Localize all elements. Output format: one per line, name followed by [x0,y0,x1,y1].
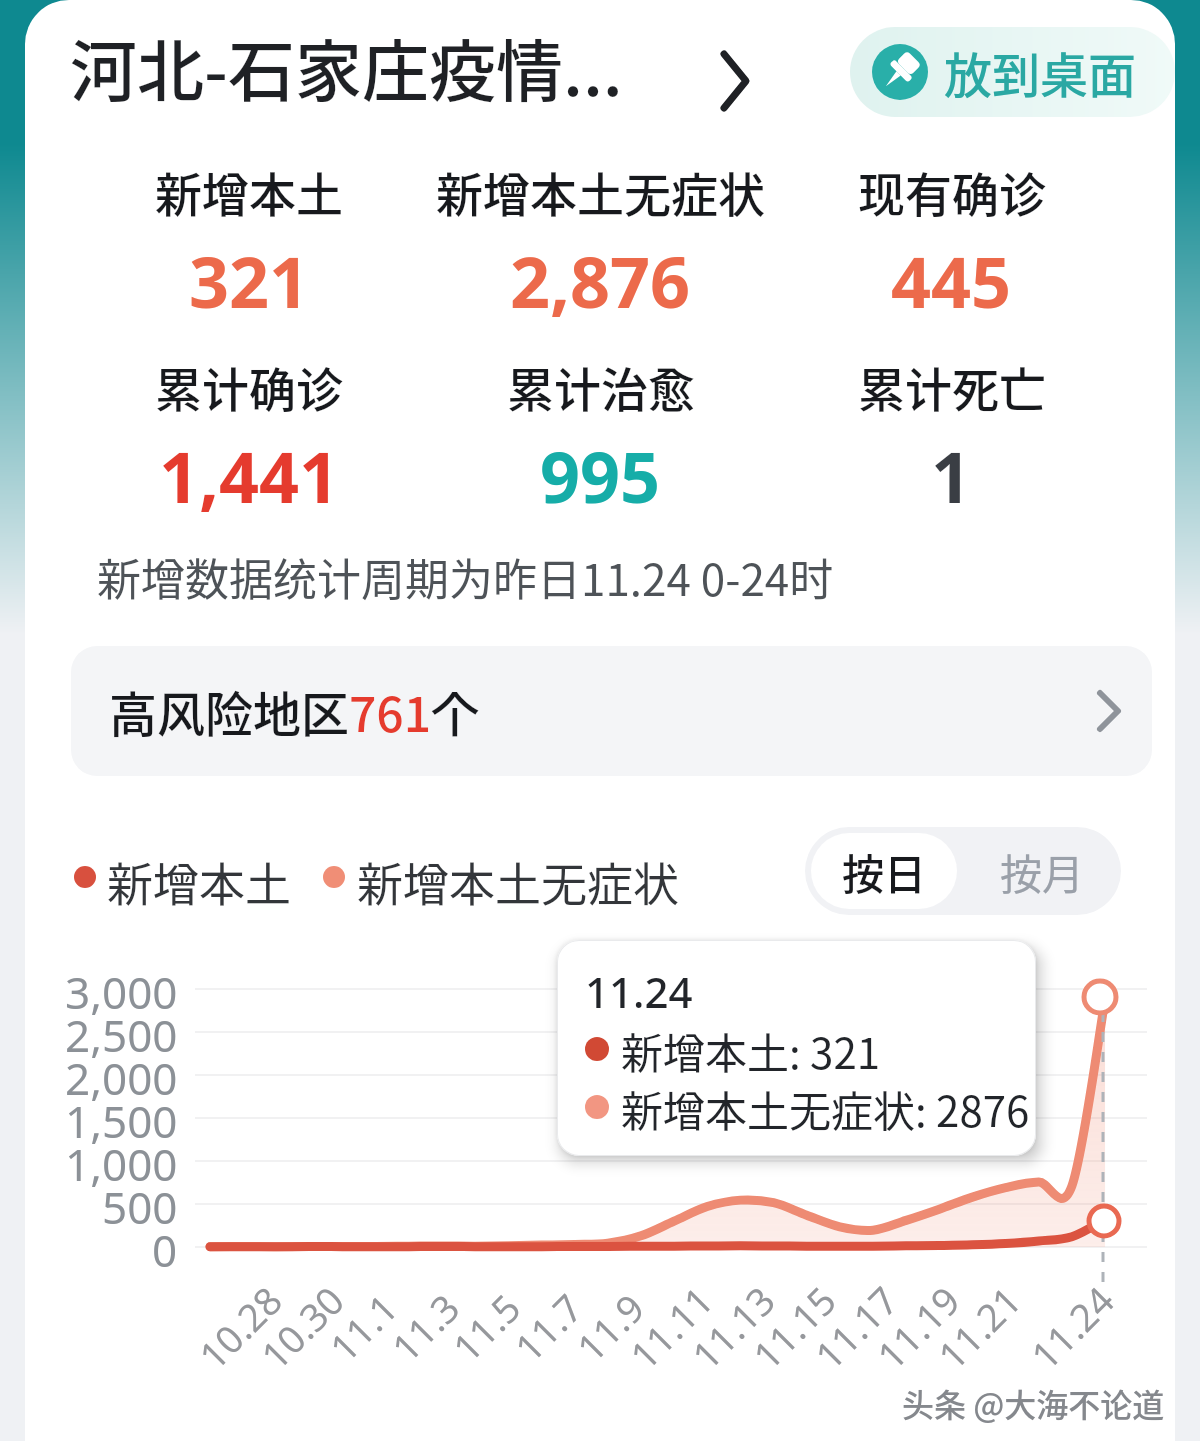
staticText: 新增本土无症状: 2876 [621,1078,1030,1136]
staticText: 11.19 [865,1274,971,1380]
staticText: 11.21 [926,1274,1032,1380]
staticText: 高风险地区761个 [109,676,480,746]
staticText: 11.24 [585,963,693,1020]
staticText: 10.28 [187,1274,293,1380]
staticText: 2,500 [65,1005,178,1059]
staticText: 河北-石家庄疫情... [70,18,623,115]
staticText: 995 [540,428,661,523]
staticText: 11.1 [318,1282,408,1372]
staticText: 11.17 [803,1274,909,1380]
staticText: 2,000 [65,1048,178,1102]
staticText: 累计死亡 [858,352,1046,420]
staticText: 11.13 [680,1274,786,1380]
staticText: 321 [189,233,310,328]
staticText: 头条 @大海不论道 [902,1380,1165,1426]
staticText: 新增本土: 321 [621,1020,881,1078]
button[interactable]: 按月 [963,827,1121,915]
staticText: 10.30 [249,1274,355,1380]
staticText: 11.11 [618,1274,724,1380]
staticText: 新增本土无症状 [357,848,679,915]
staticText: 按月 [1000,841,1085,902]
staticText: 500 [102,1177,178,1231]
staticText: 1 [931,428,972,523]
staticText: 3,000 [65,962,178,1016]
button[interactable]: 放到桌面 [850,27,1175,117]
staticText: 2,876 [510,233,691,328]
staticText: 1,441 [159,428,340,523]
staticText: 0 [152,1220,178,1274]
staticText: 放到桌面 [944,37,1137,107]
staticText: 445 [891,233,1012,328]
staticText: 现有确诊 [858,157,1046,225]
button[interactable]: 河北-石家庄疫情... [70,18,623,115]
staticText: 11.9 [565,1282,655,1372]
staticText: 11.5 [441,1282,531,1372]
staticText: 累计确诊 [155,352,343,420]
staticText: 新增本土 [155,157,343,225]
staticText: 11.15 [741,1274,847,1380]
staticText: 11.24 [1019,1274,1125,1380]
staticText: 11.3 [380,1282,470,1372]
staticText: 新增数据统计周期为昨日11.24 0-24时 [97,545,834,609]
staticText: 新增本土无症状 [436,157,765,225]
button[interactable]: 高风险地区761个 [71,646,1152,776]
staticText: 1,000 [65,1134,178,1188]
button[interactable]: 按日 [811,833,957,909]
staticText: 累计治愈 [507,352,695,420]
staticText: 按日 [842,841,927,902]
staticText: 新增本土 [107,848,291,915]
staticText: 1,500 [65,1091,178,1145]
staticText: 11.7 [503,1282,593,1372]
